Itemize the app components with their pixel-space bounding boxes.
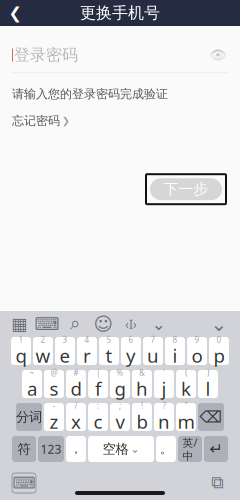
staticText: 0 — [216, 334, 221, 345]
button[interactable]: 下一步 — [146, 174, 226, 204]
staticText: 符 — [17, 441, 30, 457]
staticText: v — [115, 409, 124, 434]
staticText: ⌨ — [12, 474, 35, 492]
button[interactable]: 5 — [99, 337, 119, 365]
staticText: u — [147, 343, 159, 368]
staticText: 9 — [194, 334, 199, 345]
button[interactable]: Back — [0, 0, 30, 26]
staticText: & — [139, 367, 145, 378]
staticText: @ — [50, 367, 57, 378]
staticText: / — [74, 400, 77, 411]
staticText: # — [73, 367, 78, 378]
staticText: 5 — [106, 334, 111, 345]
button[interactable]: Search — [64, 313, 86, 335]
staticText: x — [71, 409, 81, 434]
button[interactable]: / — [66, 403, 86, 431]
button[interactable]: % — [110, 370, 130, 398]
button[interactable]: Emoji — [92, 313, 114, 335]
button[interactable]: ~ — [22, 370, 42, 398]
staticText: 。 — [160, 442, 172, 456]
button[interactable]: Voice input — [148, 313, 170, 335]
button[interactable]: Show password — [208, 46, 228, 64]
button[interactable]: ! — [132, 403, 152, 431]
staticText: 忘记密码 — [12, 113, 60, 128]
staticText: d — [70, 376, 81, 401]
staticText: 请输入您的登录密码完成验证 — [12, 87, 168, 101]
button[interactable]: 4 — [77, 337, 97, 365]
staticText: ❮ — [8, 4, 21, 22]
button[interactable]: 空格 — [88, 436, 154, 462]
staticText: ) — [207, 367, 209, 378]
staticText: 分词 — [16, 409, 42, 425]
button[interactable]: ) — [198, 370, 218, 398]
staticText: ! — [141, 400, 143, 411]
staticText: ⌄ — [151, 314, 166, 334]
staticText: ▦ — [11, 314, 27, 334]
staticText: 8 — [172, 334, 177, 345]
button[interactable]: 123 — [38, 436, 64, 462]
staticText: ' — [163, 367, 165, 378]
button[interactable]: Switch keyboard — [12, 473, 36, 493]
staticText: ☺ — [93, 313, 112, 335]
staticText: 2 — [40, 334, 45, 345]
staticText: 下一步 — [163, 180, 208, 198]
button[interactable]: @ — [44, 370, 64, 398]
button[interactable]: Translate — [120, 313, 142, 335]
staticText: s — [49, 376, 58, 401]
button[interactable]: | — [88, 370, 108, 398]
staticText: : — [97, 400, 99, 411]
staticText: j — [161, 376, 166, 401]
button[interactable]: 3 — [55, 337, 75, 365]
button[interactable]: 2 — [33, 337, 53, 365]
staticText: ⧉ — [211, 474, 223, 491]
staticText: t — [105, 343, 112, 368]
staticText: 更换手机号 — [80, 3, 160, 23]
button[interactable]: 1 — [11, 337, 31, 365]
button[interactable]: 8 — [165, 337, 185, 365]
staticText: 6 — [128, 334, 133, 345]
staticText: k — [181, 376, 191, 401]
staticText: ⌕ — [70, 315, 80, 333]
staticText: 7 — [150, 334, 155, 345]
staticText: ? — [162, 400, 165, 411]
staticText: r — [83, 343, 91, 368]
button[interactable]: ? — [154, 403, 174, 431]
button[interactable]: ; — [110, 403, 130, 431]
button[interactable]: 符 — [12, 436, 36, 462]
button[interactable]: 9 — [187, 337, 207, 365]
staticText: 👁 — [209, 47, 226, 63]
button[interactable]: 0 — [209, 337, 229, 365]
button[interactable]: ' — [154, 370, 174, 398]
button[interactable]: ⌫ — [198, 403, 224, 431]
staticText: ‹I› — [125, 316, 137, 332]
button[interactable]: Keyboard layouts — [8, 313, 30, 335]
button[interactable]: 分词 — [16, 403, 42, 431]
staticText: q — [15, 343, 26, 368]
button[interactable]: 7 — [143, 337, 163, 365]
button[interactable]: Keyboard — [36, 313, 58, 335]
button[interactable]: " — [176, 403, 196, 431]
staticText: ⌫ — [199, 408, 222, 426]
staticText: m — [177, 409, 194, 434]
button[interactable]: 忘记密码 — [12, 113, 70, 128]
staticText: 3 — [62, 334, 67, 345]
button[interactable]: ↵ — [204, 436, 228, 462]
button[interactable]: & — [132, 370, 152, 398]
button[interactable]: : — [88, 403, 108, 431]
button[interactable]: Clipboard — [206, 473, 228, 493]
staticText: ↵ — [209, 440, 222, 458]
button[interactable]: 6 — [121, 337, 141, 365]
button[interactable]: # — [66, 370, 86, 398]
button[interactable]: 。 — [156, 436, 176, 462]
staticText: ⌨ — [34, 314, 59, 334]
button[interactable]: Hide keyboard — [206, 313, 232, 335]
staticText: w — [35, 343, 50, 368]
staticText: a — [27, 376, 37, 401]
staticText: 1 — [18, 334, 23, 345]
button[interactable]: ， — [66, 436, 86, 462]
button[interactable]: 英/中 — [178, 436, 202, 462]
button[interactable]: - — [44, 403, 64, 431]
staticText: ( — [185, 367, 187, 378]
button[interactable]: ( — [176, 370, 196, 398]
staticText: g — [114, 376, 125, 401]
